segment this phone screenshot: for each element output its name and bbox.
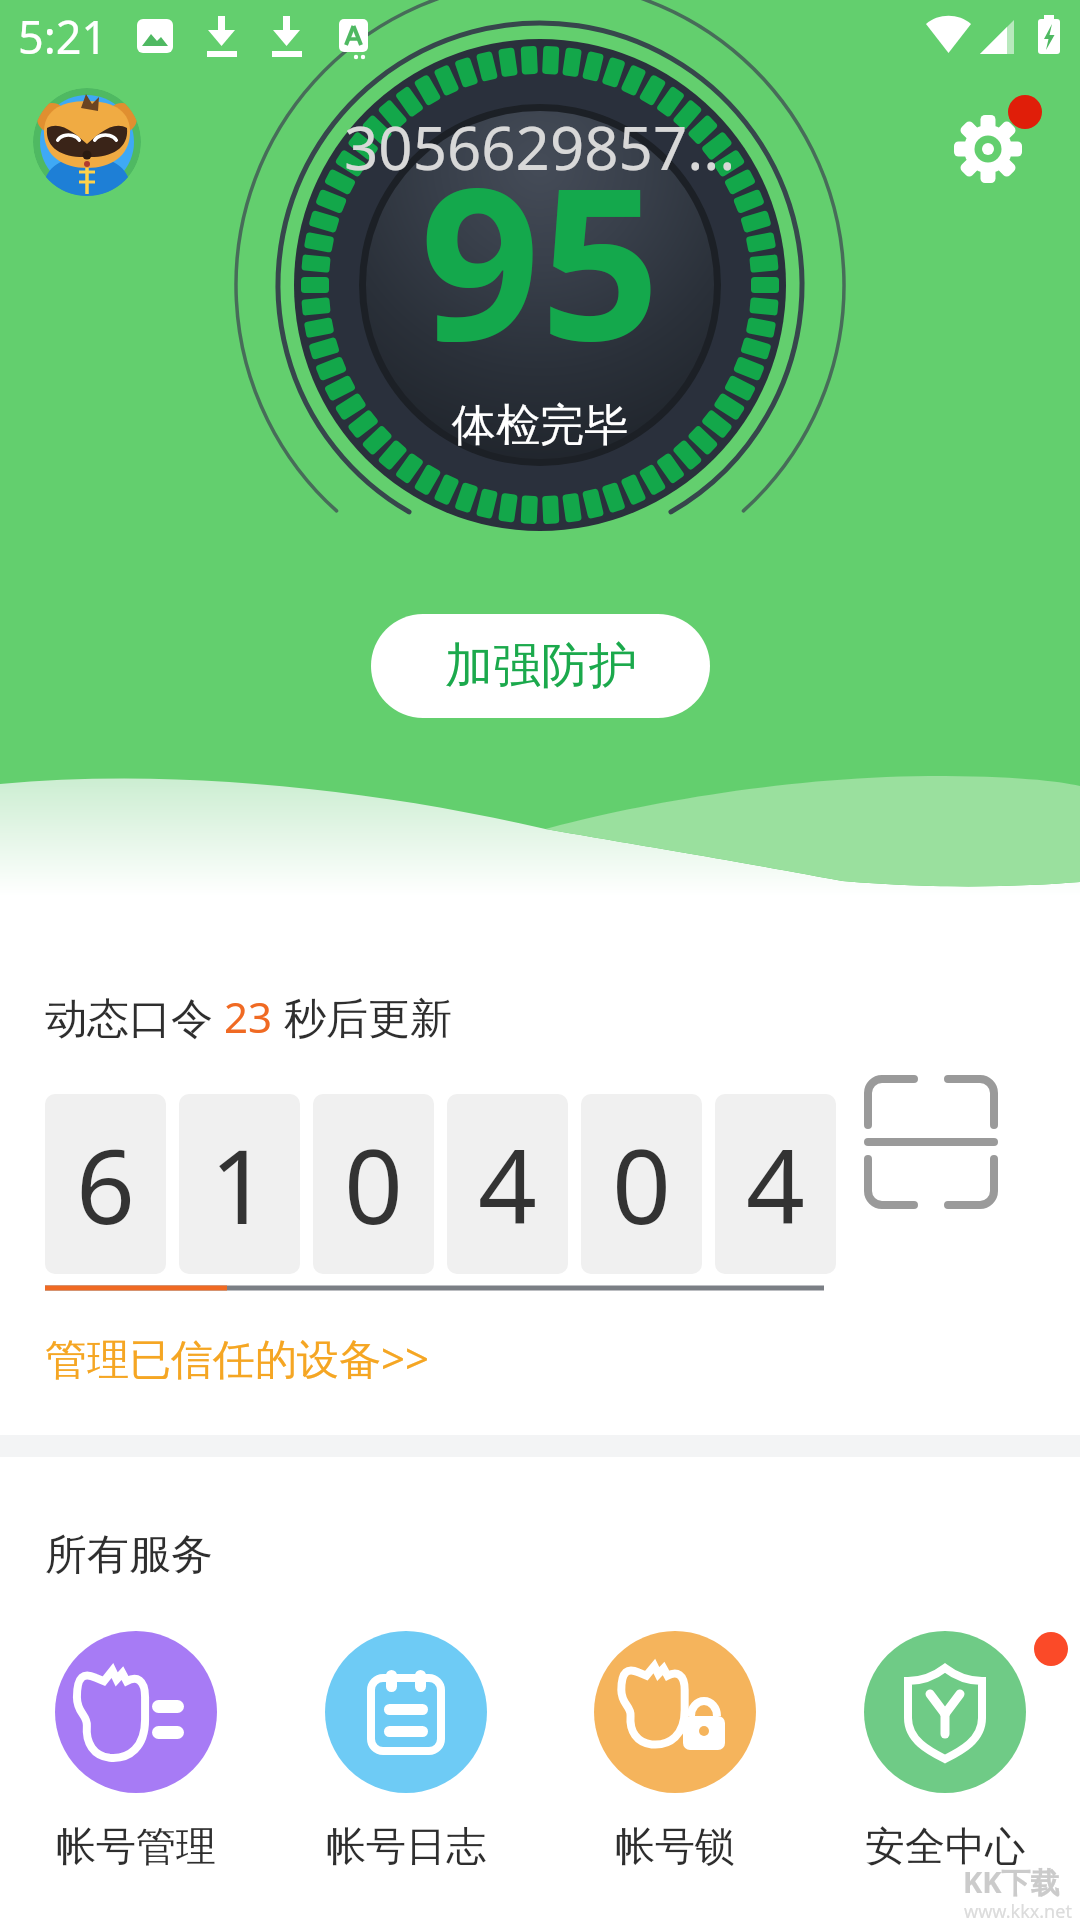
button[interactable]: 管理已信任的设备>> (45, 1329, 430, 1386)
staticText: 0 (344, 1114, 403, 1254)
staticText: 95 (420, 116, 661, 402)
button[interactable]: Profile (33, 88, 141, 196)
button[interactable]: 安全中心 (830, 1631, 1060, 1920)
button[interactable]: 帐号锁 (560, 1631, 790, 1871)
staticText: 4 (478, 1114, 537, 1254)
staticText: 1 (210, 1114, 269, 1254)
button[interactable]: 加强防护 (371, 614, 710, 718)
staticText: 体检完毕 (452, 398, 628, 453)
staticText: 6 (76, 1114, 135, 1254)
staticText: 动态口令 (45, 988, 224, 1045)
staticText: 帐号锁 (615, 1821, 735, 1871)
staticText: 帐号管理 (56, 1821, 216, 1871)
staticText: 安全中心 (865, 1821, 1025, 1871)
staticText: 帐号日志 (326, 1821, 486, 1871)
staticText: 23 (224, 988, 273, 1045)
staticText: 5:21 (18, 6, 108, 67)
staticText: 4 (746, 1114, 805, 1254)
button[interactable]: 帐号日志 (291, 1631, 521, 1871)
staticText: 0 (612, 1114, 671, 1254)
staticText: 秒后更新 (273, 988, 452, 1045)
staticText: 加强防护 (445, 636, 637, 696)
staticText: www.kkx.net (964, 1899, 1072, 1920)
button[interactable]: Scan QR code (862, 1073, 1000, 1211)
staticText: 3056629857... (344, 106, 736, 188)
staticText: 所有服务 (45, 1529, 213, 1582)
staticText: KK下载 (963, 1862, 1060, 1902)
button[interactable]: 帐号管理 (21, 1631, 251, 1871)
button[interactable]: Settings (952, 92, 1052, 192)
